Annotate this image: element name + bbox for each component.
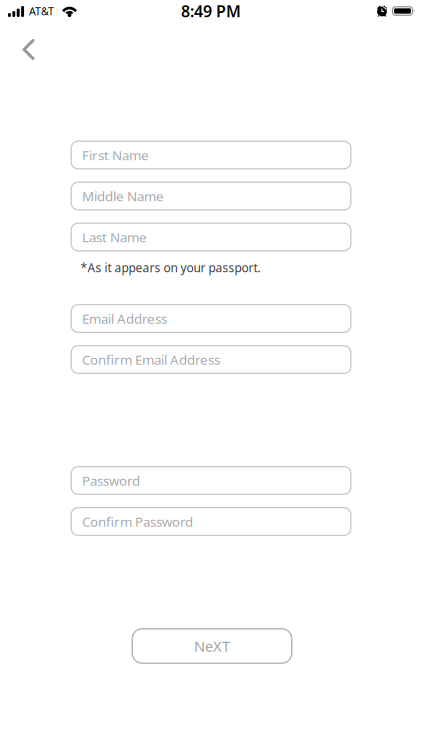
button[interactable]: NeXT	[131, 628, 292, 664]
staticText: Middle Name	[82, 187, 164, 205]
button[interactable]: Password	[70, 466, 351, 495]
staticText: Confirm Password	[82, 513, 193, 530]
button[interactable]: Back	[12, 29, 44, 70]
staticText: AT&T	[29, 4, 54, 18]
button[interactable]: Confirm Password	[70, 507, 351, 536]
staticText: Last Name	[82, 228, 147, 246]
button[interactable]: Last Name	[70, 222, 351, 251]
staticText: Email Address	[82, 310, 167, 327]
staticText: *As it appears on your passport.	[80, 259, 260, 275]
staticText: NeXT	[194, 636, 230, 656]
staticText: First Name	[82, 146, 149, 164]
staticText: 8:49 PM	[181, 0, 241, 22]
button[interactable]: Confirm Email Address	[70, 345, 351, 374]
staticText: Password	[82, 472, 140, 489]
button[interactable]: Middle Name	[70, 181, 351, 210]
staticText: Confirm Email Address	[82, 351, 220, 368]
button[interactable]: First Name	[70, 140, 351, 169]
button[interactable]: Email Address	[70, 304, 351, 333]
